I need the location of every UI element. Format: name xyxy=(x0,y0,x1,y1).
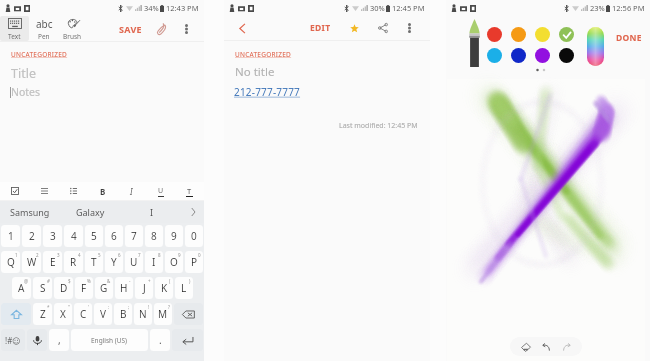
button[interactable]: I xyxy=(121,201,182,223)
button[interactable]: Red xyxy=(487,27,502,42)
button[interactable]: 0 xyxy=(185,225,203,247)
button[interactable]: Shift xyxy=(1,303,31,325)
button[interactable]: Share xyxy=(375,20,391,36)
button[interactable]: Italic xyxy=(117,182,146,200)
button[interactable]: Eraser xyxy=(518,339,534,355)
button[interactable]: Yellow xyxy=(535,27,550,42)
button[interactable]: More options xyxy=(401,20,417,36)
button[interactable]: Enter xyxy=(172,329,203,351)
staticText: * xyxy=(47,304,50,310)
button[interactable]: Brush xyxy=(469,19,480,67)
staticText: 23% xyxy=(590,3,605,13)
staticText: 2 xyxy=(36,252,39,258)
button[interactable]: Y xyxy=(105,251,123,273)
button[interactable]: A xyxy=(12,277,31,299)
button[interactable]: abc xyxy=(29,16,58,41)
staticText: UNCATEGORIZED xyxy=(235,50,292,59)
staticText: EDIT xyxy=(310,22,331,34)
button[interactable]: Bullets xyxy=(59,182,88,200)
button[interactable]: Favorite xyxy=(346,20,362,36)
button[interactable]: T xyxy=(85,251,103,273)
button[interactable]: SAVE xyxy=(116,17,145,41)
button[interactable]: 6 xyxy=(105,225,123,247)
button[interactable]: Light blue xyxy=(487,48,502,63)
button[interactable]: P xyxy=(185,251,203,273)
button[interactable]: N xyxy=(134,303,152,325)
button[interactable]: Brush xyxy=(58,16,87,41)
button[interactable]: W xyxy=(22,251,41,273)
button[interactable]: L xyxy=(175,277,193,299)
staticText: English (US) xyxy=(91,336,128,345)
button[interactable]: D xyxy=(54,277,73,299)
staticText: 1 xyxy=(15,252,18,258)
staticText: % xyxy=(87,278,91,284)
button[interactable]: , xyxy=(49,329,69,351)
button[interactable]: U xyxy=(125,251,143,273)
button[interactable]: Black xyxy=(559,48,574,63)
button[interactable]: C xyxy=(74,303,92,325)
button[interactable]: Attach xyxy=(152,19,172,39)
button[interactable]: Green selected xyxy=(559,27,574,42)
button[interactable]: E xyxy=(43,251,62,273)
button[interactable]: X xyxy=(54,303,72,325)
button[interactable]: 7 xyxy=(125,225,143,247)
button[interactable]: Undo xyxy=(538,339,554,355)
button[interactable]: H xyxy=(115,277,133,299)
staticText: 6 xyxy=(118,252,121,258)
staticText: G xyxy=(100,281,108,295)
button[interactable]: Text style xyxy=(175,182,204,200)
button[interactable]: Galaxy xyxy=(60,201,121,223)
button[interactable]: I xyxy=(145,251,163,273)
button[interactable]: J xyxy=(135,277,153,299)
button[interactable]: 9 xyxy=(165,225,183,247)
button[interactable]: UNCATEGORIZED xyxy=(235,50,292,59)
button[interactable]: B xyxy=(114,303,132,325)
button[interactable]: 212-777-7777 xyxy=(234,85,301,99)
staticText: X xyxy=(60,307,66,321)
button[interactable]: V xyxy=(94,303,112,325)
staticText: abc xyxy=(36,17,53,31)
staticText: I xyxy=(150,206,154,218)
button[interactable]: Text xyxy=(0,16,29,41)
button[interactable]: Z xyxy=(33,303,52,325)
button[interactable]: Underline xyxy=(146,182,175,200)
staticText: U xyxy=(130,255,138,269)
button[interactable]: Bold xyxy=(88,182,117,200)
staticText: Brush xyxy=(63,32,82,41)
button[interactable]: Orange xyxy=(511,27,526,42)
button[interactable]: Purple xyxy=(535,48,550,63)
button[interactable]: Redo xyxy=(558,339,574,355)
button[interactable]: Align xyxy=(30,182,59,200)
button[interactable]: G xyxy=(95,277,113,299)
button[interactable]: K xyxy=(155,277,173,299)
button[interactable]: Samsung xyxy=(0,201,60,223)
staticText: & xyxy=(107,278,111,284)
button[interactable]: S xyxy=(33,277,52,299)
button[interactable]: 2 xyxy=(22,225,41,247)
button[interactable]: Color picker xyxy=(587,27,604,66)
button[interactable]: EDIT xyxy=(307,17,334,39)
button[interactable]: . xyxy=(150,329,170,351)
button[interactable]: R xyxy=(64,251,83,273)
button[interactable]: O xyxy=(165,251,183,273)
button[interactable]: Backspace xyxy=(174,303,203,325)
button[interactable]: Checklist xyxy=(0,182,30,200)
button[interactable]: 4 xyxy=(64,225,83,247)
button[interactable]: Q xyxy=(1,251,20,273)
button[interactable]: F xyxy=(75,277,93,299)
button[interactable]: English (US) xyxy=(71,329,148,351)
button[interactable]: Voice input xyxy=(27,329,47,351)
button[interactable]: M xyxy=(154,303,172,325)
button[interactable]: Blue xyxy=(511,48,526,63)
button[interactable]: 8 xyxy=(145,225,163,247)
button[interactable]: !#☺ xyxy=(1,329,25,351)
button[interactable]: More suggestions xyxy=(182,201,204,223)
button[interactable]: Back xyxy=(231,17,253,39)
button[interactable]: More options xyxy=(177,20,195,38)
button[interactable]: 1 xyxy=(1,225,20,247)
button[interactable]: 3 xyxy=(43,225,62,247)
staticText: J xyxy=(143,281,146,295)
button[interactable]: UNCATEGORIZED xyxy=(11,50,68,59)
button[interactable]: 5 xyxy=(85,225,103,247)
button[interactable]: DONE xyxy=(613,27,645,49)
